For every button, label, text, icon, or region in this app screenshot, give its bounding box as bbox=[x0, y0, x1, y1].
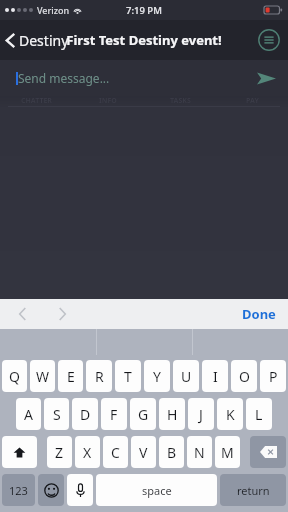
staticText: X bbox=[83, 443, 92, 462]
button[interactable]: Dictation bbox=[67, 474, 93, 506]
staticText: 123 bbox=[9, 483, 28, 498]
staticText: Q bbox=[9, 367, 20, 386]
button[interactable]: N bbox=[187, 436, 212, 468]
button[interactable]: U bbox=[173, 360, 199, 392]
staticText: PAY bbox=[246, 96, 259, 106]
staticText: U bbox=[181, 367, 192, 386]
button[interactable]: Menu bbox=[258, 29, 280, 51]
staticText: Send message... bbox=[18, 70, 110, 86]
button[interactable]: T bbox=[115, 360, 141, 392]
staticText: C bbox=[111, 443, 120, 462]
staticText: space bbox=[142, 483, 172, 498]
button[interactable]: CHATTER bbox=[0, 96, 72, 106]
staticText: 7:19 PM bbox=[126, 4, 162, 17]
staticText: W bbox=[36, 367, 50, 386]
staticText: Z bbox=[55, 443, 64, 462]
button[interactable]: G bbox=[130, 398, 156, 430]
button[interactable]: return bbox=[220, 474, 286, 506]
staticText: G bbox=[138, 405, 149, 424]
button[interactable]: K bbox=[217, 398, 243, 430]
button[interactable]: M bbox=[215, 436, 240, 468]
button[interactable]: S bbox=[44, 398, 69, 430]
button[interactable]: C bbox=[103, 436, 128, 468]
button[interactable]: J bbox=[188, 398, 214, 430]
staticText: S bbox=[53, 405, 61, 424]
staticText: TASKS bbox=[170, 96, 191, 106]
button[interactable]: H bbox=[159, 398, 185, 430]
staticText: F bbox=[110, 405, 118, 424]
button[interactable]: Send message... bbox=[0, 60, 288, 96]
staticText: return bbox=[237, 483, 270, 498]
staticText: D bbox=[80, 405, 91, 424]
staticText: H bbox=[167, 405, 178, 424]
staticText: I bbox=[213, 367, 218, 386]
button[interactable]: F bbox=[101, 398, 127, 430]
button[interactable]: Emoji bbox=[38, 474, 64, 506]
staticText: M bbox=[221, 443, 234, 462]
staticText: Verizon bbox=[37, 4, 70, 16]
button[interactable]: E bbox=[58, 360, 83, 392]
staticText: R bbox=[95, 367, 104, 386]
button[interactable]: Z bbox=[47, 436, 72, 468]
button[interactable]: Previous field bbox=[12, 304, 32, 324]
button[interactable]: L bbox=[246, 398, 272, 430]
staticText: First Test Destiny event! bbox=[66, 31, 222, 49]
button[interactable]: D bbox=[72, 398, 98, 430]
button[interactable]: W bbox=[30, 360, 55, 392]
staticText: K bbox=[226, 405, 235, 424]
button[interactable]: 123 bbox=[2, 474, 35, 506]
button[interactable]: R bbox=[86, 360, 112, 392]
button[interactable]: O bbox=[231, 360, 257, 392]
staticText: A bbox=[24, 405, 33, 424]
staticText: B bbox=[167, 443, 177, 462]
button[interactable]: Backspace bbox=[250, 436, 286, 468]
staticText: O bbox=[239, 367, 250, 386]
staticText: N bbox=[194, 443, 205, 462]
button[interactable]: V bbox=[131, 436, 156, 468]
button[interactable]: I bbox=[202, 360, 228, 392]
button[interactable]: Next field bbox=[52, 304, 72, 324]
button[interactable]: Y bbox=[144, 360, 170, 392]
button[interactable]: Q bbox=[2, 360, 27, 392]
staticText: T bbox=[124, 367, 132, 386]
staticText: L bbox=[255, 405, 263, 424]
button[interactable]: B bbox=[159, 436, 184, 468]
staticText: Y bbox=[153, 367, 161, 386]
button[interactable]: A bbox=[16, 398, 41, 430]
staticText: E bbox=[67, 367, 75, 386]
button[interactable]: space bbox=[96, 474, 217, 506]
staticText: V bbox=[139, 443, 148, 462]
staticText: Done bbox=[242, 305, 276, 323]
button[interactable]: Done bbox=[230, 300, 288, 328]
staticText: INFO bbox=[99, 96, 117, 106]
staticText: P bbox=[269, 367, 278, 386]
button[interactable]: Shift bbox=[2, 436, 37, 468]
staticText: CHATTER bbox=[21, 96, 52, 106]
button[interactable]: P bbox=[260, 360, 286, 392]
button[interactable]: Send bbox=[254, 66, 278, 90]
staticText: Destiny bbox=[19, 31, 69, 50]
button[interactable]: X bbox=[75, 436, 100, 468]
staticText: J bbox=[199, 405, 203, 424]
button[interactable]: Destiny bbox=[0, 25, 77, 56]
